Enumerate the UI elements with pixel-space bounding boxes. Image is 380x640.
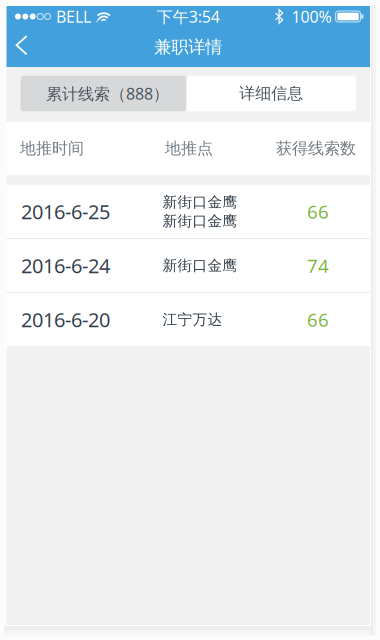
button[interactable]: 2016-6-20 — [6, 293, 370, 346]
staticText: 100% — [292, 6, 332, 27]
button[interactable]: Back — [6, 27, 44, 67]
staticText: 2016-6-20 — [21, 306, 110, 333]
staticText: 详细信息 — [239, 84, 303, 103]
button[interactable]: 详细信息 — [186, 76, 356, 111]
staticText: 江宁万达 — [162, 310, 222, 328]
staticText: 新街口金鹰 — [162, 212, 237, 230]
staticText: 74 — [307, 253, 329, 278]
staticText: 下午3:54 — [157, 6, 220, 27]
button[interactable]: 累计线索（888） — [20, 76, 186, 111]
staticText: 2016-6-25 — [21, 198, 110, 225]
button[interactable]: 2016-6-25 — [6, 185, 370, 238]
button[interactable]: 2016-6-24 — [6, 239, 370, 292]
staticText: 地推点 — [165, 139, 213, 158]
staticText: 新街口金鹰 — [162, 256, 237, 274]
staticText: 兼职详情 — [154, 36, 222, 58]
staticText: 新街口金鹰 — [162, 193, 237, 211]
staticText: 地推时间 — [20, 139, 84, 158]
staticText: 2016-6-24 — [21, 252, 110, 279]
staticText: 66 — [307, 199, 329, 224]
staticText: 66 — [307, 307, 329, 332]
staticText: BELL — [56, 6, 91, 27]
staticText: 累计线索（888） — [46, 83, 169, 104]
staticText: 获得线索数 — [276, 139, 356, 158]
